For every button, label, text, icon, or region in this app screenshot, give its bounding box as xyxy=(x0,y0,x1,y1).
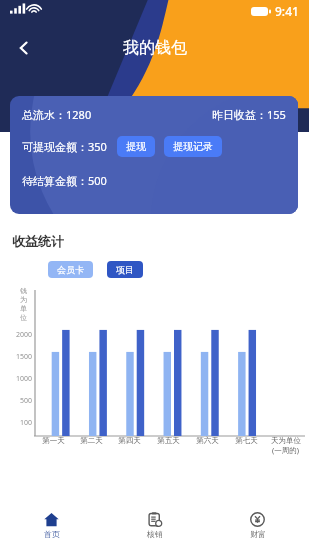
staticText: 提现 xyxy=(126,140,146,153)
button[interactable]: Back xyxy=(6,30,42,66)
staticText: 第四天 xyxy=(118,436,141,445)
staticText: 会员卡 xyxy=(57,264,84,275)
staticText: 第二天 xyxy=(80,436,103,445)
button[interactable]: 提现 xyxy=(117,136,155,157)
staticText: 天为单位 xyxy=(271,436,301,445)
staticText: 位 xyxy=(20,313,27,322)
staticText: 第五天 xyxy=(157,436,180,445)
staticText: 钱 xyxy=(20,286,27,295)
staticText: 1000 xyxy=(8,374,32,384)
button[interactable]: 财富 xyxy=(206,500,309,550)
button[interactable]: 首页 xyxy=(0,500,103,550)
staticText: 第六天 xyxy=(196,436,219,445)
staticText: 收益统计 xyxy=(12,233,64,249)
staticText: 总流水：1280 xyxy=(22,107,92,122)
staticText: 提现记录 xyxy=(173,140,213,153)
button[interactable]: 项目 xyxy=(107,261,143,278)
staticText: 项目 xyxy=(116,264,134,275)
staticText: (一周的) xyxy=(272,445,299,455)
button[interactable]: 会员卡 xyxy=(48,261,93,278)
staticText: 1500 xyxy=(8,352,32,362)
staticText: 可提现金额：350 xyxy=(22,139,107,154)
staticText: 2000 xyxy=(8,330,32,340)
staticText: 财富 xyxy=(250,529,266,539)
button[interactable]: 提现记录 xyxy=(164,136,222,157)
staticText: 9:41 xyxy=(275,3,299,19)
staticText: 500 xyxy=(8,396,32,406)
staticText: 第七天 xyxy=(235,436,258,445)
staticText: 我的钱包 xyxy=(123,38,187,58)
staticText: 第一天 xyxy=(42,436,65,445)
staticText: 核销 xyxy=(147,529,163,539)
button[interactable]: 核销 xyxy=(103,500,206,550)
staticText: 待结算金额：500 xyxy=(22,173,107,188)
staticText: 单 xyxy=(20,304,27,313)
staticText: 为 xyxy=(20,295,27,304)
staticText: 100 xyxy=(8,418,32,428)
staticText: 昨日收益：155 xyxy=(212,107,286,122)
staticText: 首页 xyxy=(44,529,60,539)
